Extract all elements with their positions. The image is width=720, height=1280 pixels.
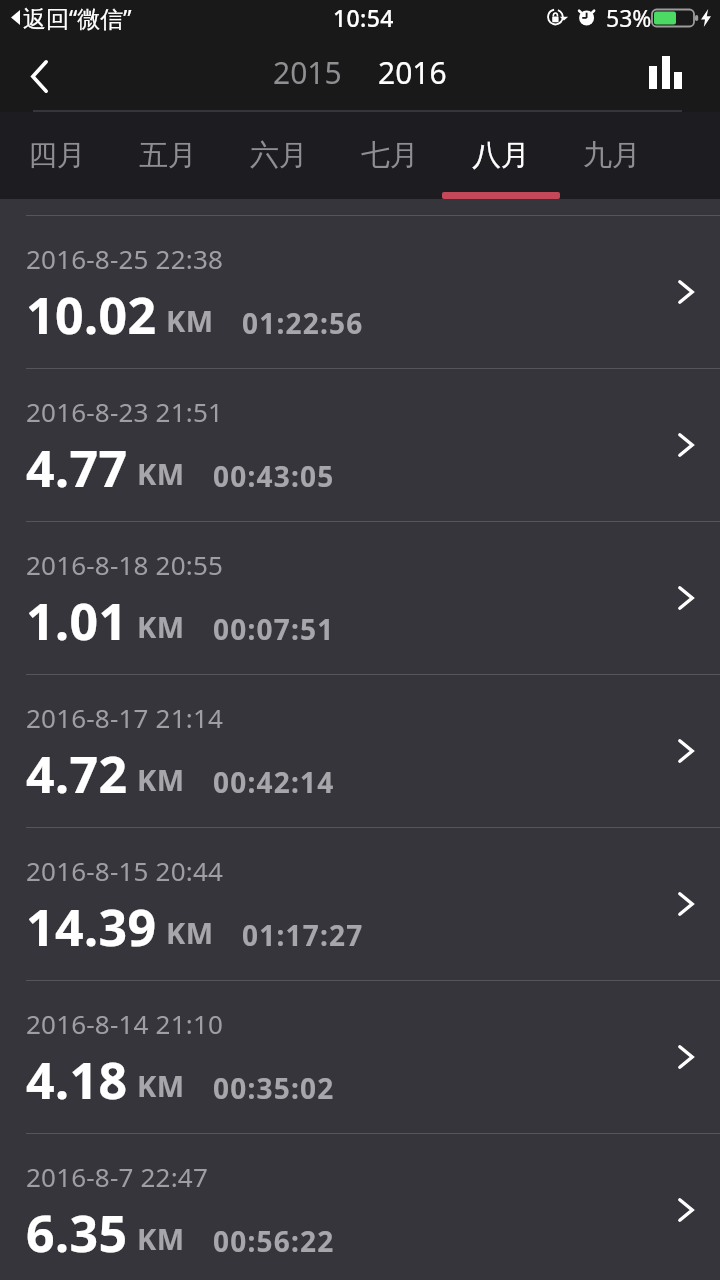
button[interactable]: 2016-8-15 20:44	[0, 828, 720, 980]
staticText: 2016	[378, 52, 447, 93]
staticText: 返回“微信”	[23, 2, 132, 33]
staticText: 2016-8-17 21:14	[26, 700, 224, 735]
staticText: 4.18	[26, 1046, 128, 1114]
button[interactable]: 2016-8-18 20:55	[0, 522, 720, 674]
staticText: 2016-8-15 20:44	[26, 853, 224, 888]
staticText: 2015	[273, 52, 342, 93]
button[interactable]: 六月	[223, 112, 334, 199]
staticText: 2016-8-18 20:55	[26, 547, 224, 582]
staticText: KM	[166, 301, 214, 340]
staticText: 六月	[250, 137, 308, 174]
staticText: 14.39	[26, 893, 157, 961]
button[interactable]: 2016-8-17 21:14	[0, 675, 720, 827]
button[interactable]: 2016-8-23 21:51	[0, 369, 720, 521]
staticText: 10.02	[26, 281, 157, 349]
staticText: 10:54	[333, 2, 394, 33]
button[interactable]: 九月	[556, 112, 667, 199]
button[interactable]: 八月	[445, 112, 556, 199]
staticText: 00:42:14	[213, 763, 335, 801]
button[interactable]: 2016-8-25 22:38	[0, 216, 720, 368]
staticText: 01:17:27	[242, 916, 364, 954]
staticText: 00:56:22	[213, 1222, 335, 1260]
staticText: 53%	[606, 2, 652, 33]
button[interactable]: Back to WeChat	[11, 2, 132, 33]
button[interactable]: 四月	[1, 112, 112, 199]
button[interactable]: Statistics	[630, 40, 720, 112]
staticText: 2016-8-23 21:51	[26, 394, 224, 429]
button[interactable]: 2016	[373, 44, 452, 101]
staticText: KM	[137, 454, 185, 493]
staticText: 4.77	[26, 434, 128, 502]
staticText: 1.01	[26, 587, 128, 655]
staticText: 2016-8-25 22:38	[26, 241, 224, 276]
staticText: 2016-8-14 21:10	[26, 1006, 224, 1041]
staticText: 4.72	[26, 740, 128, 808]
button[interactable]: 2016-8-7 22:47	[0, 1134, 720, 1280]
button[interactable]: 2015	[268, 44, 347, 101]
staticText: 6.35	[26, 1199, 128, 1267]
staticText: 五月	[139, 137, 197, 174]
button[interactable]: Back	[0, 40, 76, 112]
staticText: KM	[137, 607, 185, 646]
button[interactable]: 五月	[112, 112, 223, 199]
staticText: 00:35:02	[213, 1069, 335, 1107]
button[interactable]: 2016-8-14 21:10	[0, 981, 720, 1133]
staticText: KM	[166, 913, 214, 952]
staticText: KM	[137, 1219, 185, 1258]
staticText: 七月	[361, 137, 419, 174]
staticText: 2016-8-7 22:47	[26, 1159, 208, 1194]
staticText: 00:43:05	[213, 457, 335, 495]
staticText: 00:07:51	[213, 610, 335, 648]
staticText: 四月	[28, 137, 86, 174]
staticText: KM	[137, 760, 185, 799]
staticText: 01:22:56	[242, 304, 364, 342]
staticText: KM	[137, 1066, 185, 1105]
staticText: 八月	[472, 137, 530, 174]
button[interactable]: 七月	[334, 112, 445, 199]
staticText: 九月	[583, 137, 641, 174]
